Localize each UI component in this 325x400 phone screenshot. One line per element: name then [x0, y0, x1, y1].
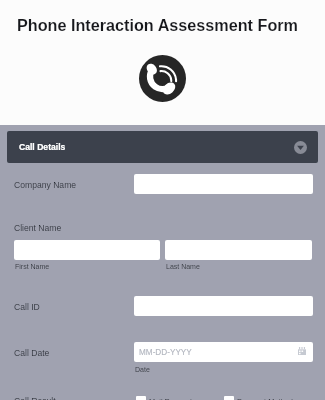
staticText: Company Name [14, 180, 77, 190]
staticText: Phone Interaction Assessment Form [0, 16, 315, 34]
staticText: MM-DD-YYYY [139, 348, 192, 357]
staticText: First Name [15, 263, 50, 271]
button[interactable]: Collapse section [294, 141, 307, 154]
button[interactable]: Payment Method [224, 396, 293, 400]
button[interactable]: Call Details [7, 131, 318, 163]
button[interactable]: Mail Request [136, 396, 193, 400]
button[interactable]: MM-DD-YYYY [134, 342, 313, 362]
staticText: Date [135, 366, 150, 374]
staticText: Call ID [14, 302, 40, 312]
staticText: Last Name [166, 263, 200, 271]
staticText: Call Date [14, 348, 50, 358]
staticText: Call Details [19, 142, 294, 152]
button[interactable]: Phone call [139, 55, 186, 102]
staticText: Mail Request [149, 397, 193, 400]
staticText: Client Name [14, 223, 62, 233]
staticText: Payment Method [237, 397, 293, 400]
staticText: Call Result [14, 396, 56, 400]
